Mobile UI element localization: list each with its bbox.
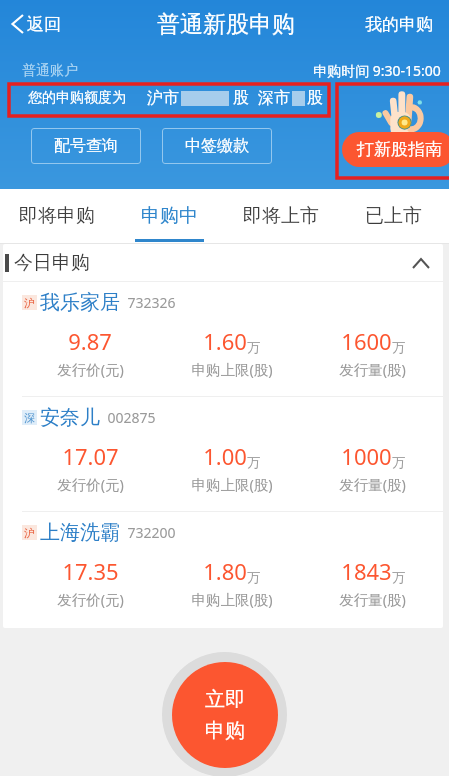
staticText: 我乐家居: [40, 290, 120, 315]
button[interactable]: 我的申购: [351, 0, 449, 48]
staticText: 沪: [24, 296, 35, 310]
staticText: 发行价(元): [57, 474, 124, 494]
staticText: 17.07: [62, 441, 119, 471]
staticText: 已上市: [365, 204, 422, 228]
staticText: 万: [247, 454, 260, 470]
staticText: 深市: [258, 88, 290, 108]
button[interactable]: 申购中: [113, 189, 225, 243]
staticText: 732326: [127, 293, 176, 312]
staticText: 上海洗霸: [40, 520, 120, 545]
staticText: 17.35: [62, 556, 119, 586]
staticText: 发行量(股): [339, 589, 406, 609]
button[interactable]: 已上市: [337, 189, 449, 243]
staticText: 1.80: [203, 556, 247, 586]
button[interactable]: Collapse: [406, 248, 436, 278]
staticText: 普通新股申购: [157, 10, 295, 39]
staticText: 发行价(元): [57, 359, 124, 379]
staticText: 申购上限(股): [191, 359, 273, 379]
staticText: 发行量(股): [339, 474, 406, 494]
staticText: 您的申购额度为: [28, 89, 126, 107]
staticText: 1843: [341, 556, 392, 586]
staticText: 1600: [341, 326, 392, 356]
staticText: 申购: [205, 718, 245, 743]
button[interactable]: 立即: [172, 662, 278, 768]
staticText: 中签缴款: [185, 136, 249, 156]
staticText: 1.00: [203, 441, 247, 471]
button[interactable]: 深: [3, 397, 443, 511]
staticText: 我的申购: [365, 14, 433, 35]
button[interactable]: 沪: [3, 282, 443, 396]
button[interactable]: 配号查询: [31, 128, 141, 164]
staticText: 股: [233, 88, 249, 108]
staticText: 即将申购: [19, 204, 95, 228]
staticText: 即将上市: [243, 204, 319, 228]
staticText: 万: [392, 569, 405, 585]
staticText: 申购时间 9:30-15:00: [313, 61, 441, 80]
staticText: 普通账户: [22, 62, 78, 80]
button[interactable]: 中签缴款: [162, 128, 272, 164]
staticText: 发行价(元): [57, 589, 124, 609]
staticText: 万: [392, 454, 405, 470]
staticText: 002875: [107, 408, 156, 427]
button[interactable]: 即将申购: [0, 189, 113, 243]
staticText: 1000: [341, 441, 392, 471]
staticText: 申购上限(股): [191, 589, 273, 609]
staticText: 安奈儿: [40, 405, 100, 430]
button[interactable]: Back: [0, 0, 71, 48]
staticText: 万: [247, 339, 260, 355]
button[interactable]: 即将上市: [225, 189, 337, 243]
button[interactable]: 今日申购: [3, 244, 443, 281]
staticText: 股: [307, 88, 323, 108]
staticText: 沪市: [147, 88, 179, 108]
staticText: 深: [24, 411, 35, 425]
staticText: 配号查询: [54, 136, 118, 156]
staticText: 沪: [24, 526, 35, 540]
staticText: 万: [392, 339, 405, 355]
staticText: 今日申购: [14, 251, 90, 275]
staticText: 立即: [205, 687, 245, 712]
staticText: 发行量(股): [339, 359, 406, 379]
staticText: 9.87: [68, 326, 112, 356]
staticText: 返回: [27, 14, 61, 35]
button[interactable]: 沪: [3, 512, 443, 626]
staticText: 申购中: [141, 204, 198, 228]
staticText: 申购上限(股): [191, 474, 273, 494]
staticText: 万: [247, 569, 260, 585]
staticText: 732200: [127, 523, 176, 542]
staticText: 打新股指南: [357, 139, 442, 160]
button[interactable]: 打新股指南: [336, 83, 449, 178]
staticText: 1.60: [203, 326, 247, 356]
